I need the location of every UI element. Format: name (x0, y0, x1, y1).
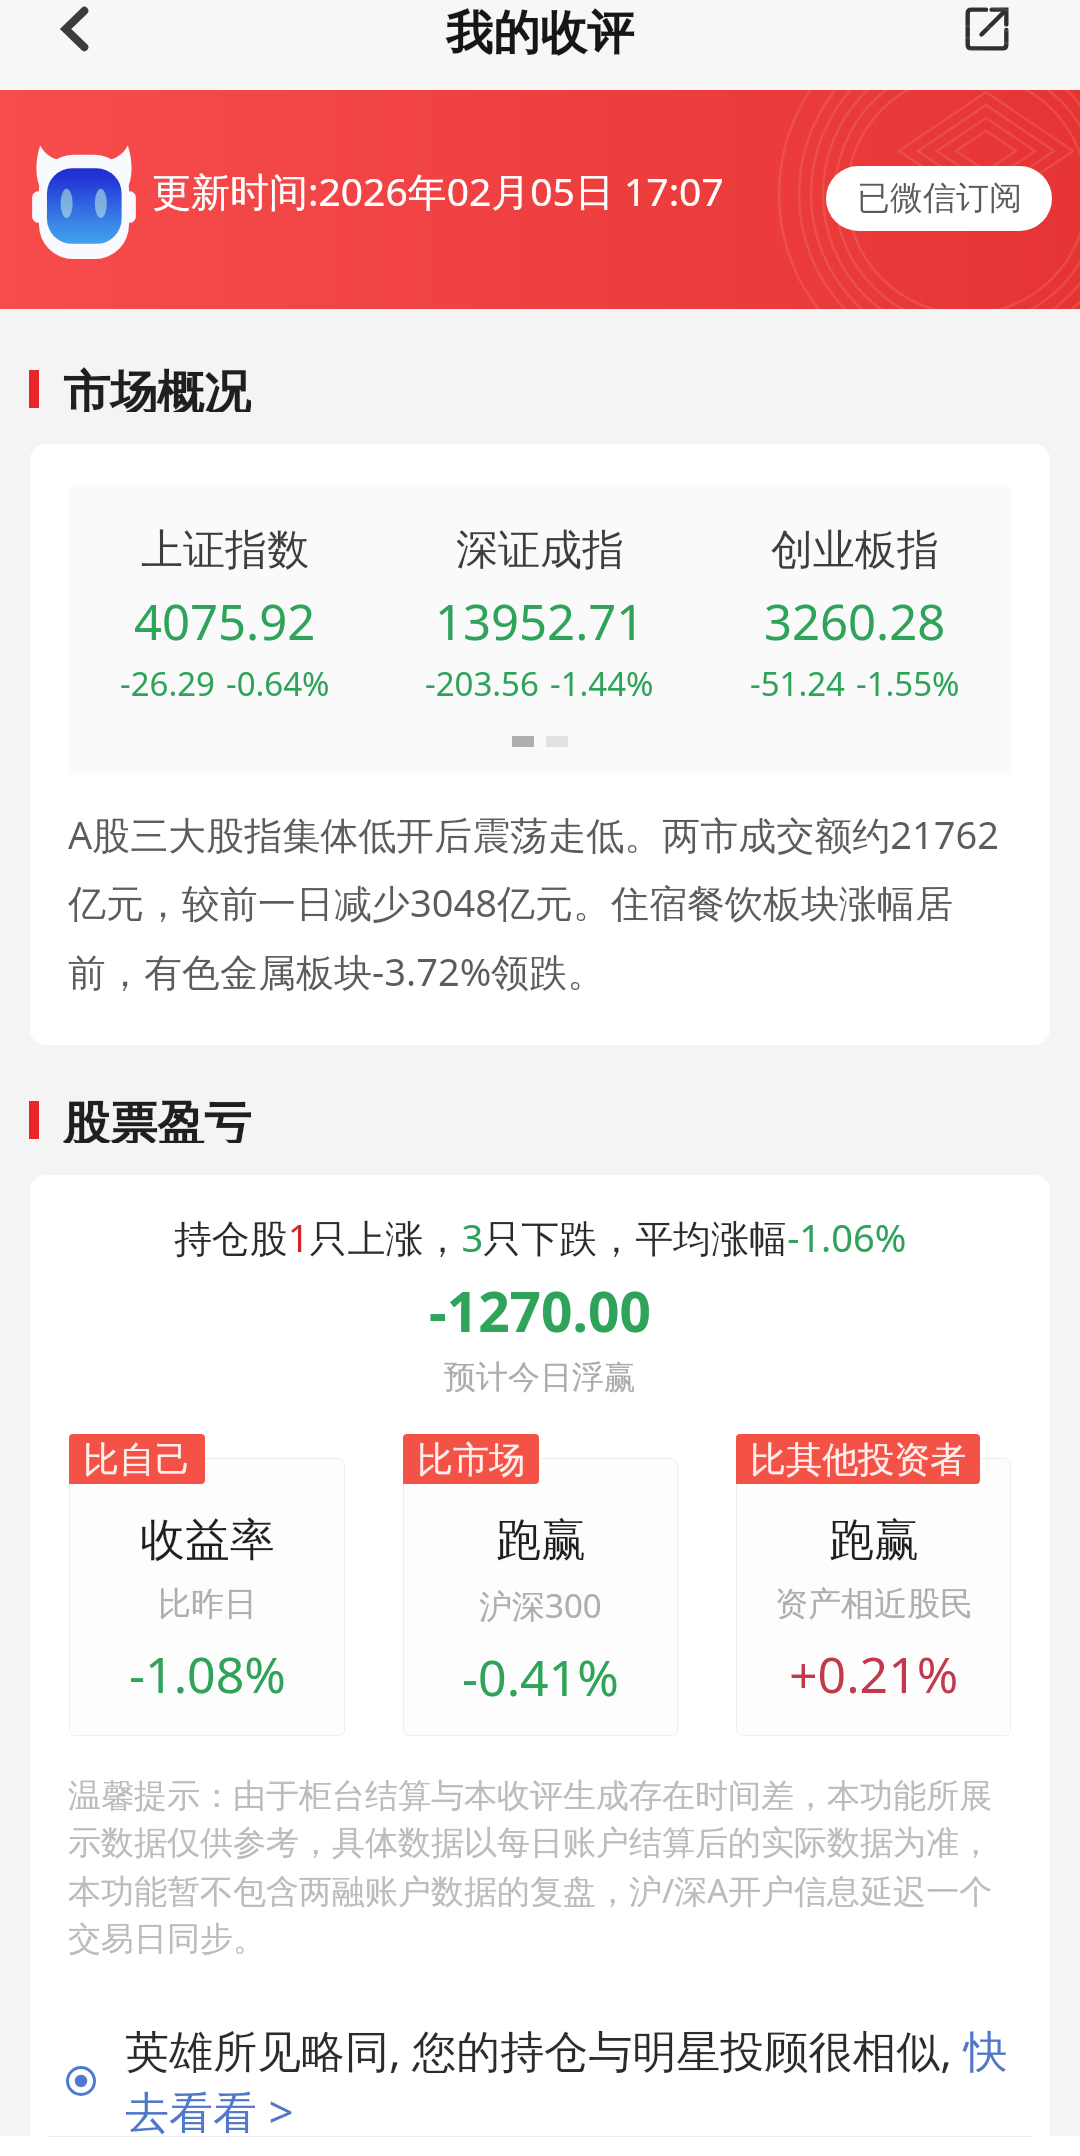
staticText: 持仓股1只上涨，3只下跌，平均涨幅-1.06% (30, 1211, 1050, 1263)
staticText: +0.21% (789, 1640, 959, 1708)
staticText: 跑赢 (496, 1512, 586, 1569)
button[interactable]: 深证成指 (382, 524, 697, 706)
button[interactable]: Share (956, 0, 1018, 60)
staticText: 4075.92 (134, 588, 316, 655)
staticText: -0.41% (462, 1643, 619, 1711)
staticText: 比自己 (83, 1437, 191, 1482)
staticText: A股三大股指集体低开后震荡走低。两市成交额约21762亿元，较前一日减少3048… (68, 808, 1012, 997)
staticText: -1.08% (129, 1640, 286, 1708)
button[interactable]: Back (42, 0, 110, 63)
staticText: 英雄所见略同, 您的持仓与明星投顾很相似, 快去看看 > (125, 2020, 1011, 2141)
button[interactable]: 跑赢 (736, 1458, 1011, 1736)
staticText: 市场概况 (63, 364, 251, 412)
staticText: 跑赢 (829, 1512, 919, 1569)
staticText: -0.64% (226, 661, 330, 706)
staticText: 我的收评 (446, 4, 634, 63)
staticText: -1.55% (856, 661, 960, 706)
staticText: 比市场 (417, 1437, 525, 1482)
staticText: 比其他投资者 (750, 1437, 966, 1482)
staticText: 沪深300 (479, 1583, 602, 1628)
staticText: -1270.00 (30, 1273, 1050, 1348)
staticText: 资产相近股民 (775, 1583, 973, 1625)
button[interactable]: 英雄所见略同, 您的持仓与明星投顾很相似, 快去看看 > (66, 2014, 1011, 2147)
staticText: 比昨日 (158, 1583, 257, 1625)
staticText: 13952.71 (435, 588, 645, 655)
staticText: 收益率 (140, 1512, 275, 1569)
staticText: 更新时间:2026年02月05日 17:07 (152, 164, 724, 217)
button[interactable]: 上证指数 (68, 524, 382, 706)
button[interactable]: 跑赢 (403, 1458, 678, 1736)
staticText: 已微信订阅 (857, 177, 1022, 219)
staticText: 创业板指 (771, 524, 939, 577)
staticText: 预计今日浮赢 (30, 1357, 1050, 1397)
staticText: -26.29 (120, 661, 215, 706)
staticText: 深证成指 (456, 524, 624, 577)
staticText: 上证指数 (141, 524, 309, 577)
staticText: -1.44% (550, 661, 654, 706)
button[interactable]: 已微信订阅 (826, 166, 1052, 231)
staticText: -203.56 (425, 661, 539, 706)
staticText: 温馨提示：由于柜台结算与本收评生成存在时间差，本功能所展示数据仅供参考，具体数据… (68, 1775, 1012, 1960)
button[interactable]: 创业板指 (697, 524, 1012, 706)
button[interactable]: 收益率 (69, 1458, 345, 1736)
staticText: -51.24 (750, 661, 845, 706)
staticText: 股票盈亏 (63, 1095, 251, 1143)
staticText: 3260.28 (764, 588, 946, 655)
